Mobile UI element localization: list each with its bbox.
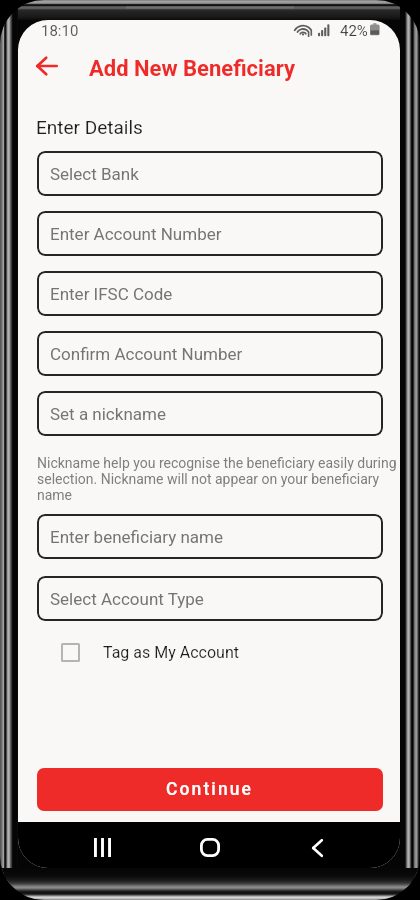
button[interactable]: Enter IFSC Code [37,271,383,316]
staticText: Enter Account Number [50,224,222,244]
staticText: Select Bank [50,164,139,184]
staticText: Set a nickname [50,404,166,424]
button[interactable]: Select Bank [37,151,383,196]
staticText: 42% [340,22,368,40]
button[interactable]: Select Account Type [37,576,383,621]
button[interactable]: Back [295,825,340,868]
staticText: Add New Beneficiary [89,56,295,82]
staticText: Select Account Type [50,589,204,609]
button[interactable]: Enter beneficiary name [37,514,383,559]
button[interactable]: Continue [37,768,383,811]
staticText: Enter Details [36,116,143,138]
button[interactable]: Back [30,51,64,81]
button[interactable]: Tag as My Account [61,643,239,662]
staticText: Enter IFSC Code [50,284,173,304]
staticText: Enter beneficiary name [50,527,223,547]
staticText: Tag as My Account [103,643,239,662]
button[interactable]: Set a nickname [37,391,383,436]
button[interactable]: Recent apps [80,825,125,868]
staticText: Confirm Account Number [50,344,243,364]
button[interactable]: Enter Account Number [37,211,383,256]
staticText: Nickname help you recognise the benefici… [37,456,397,504]
button[interactable]: Confirm Account Number [37,331,383,376]
button[interactable]: Home [187,825,232,868]
staticText: Continue [166,779,254,800]
staticText: 18:10 [41,22,79,40]
